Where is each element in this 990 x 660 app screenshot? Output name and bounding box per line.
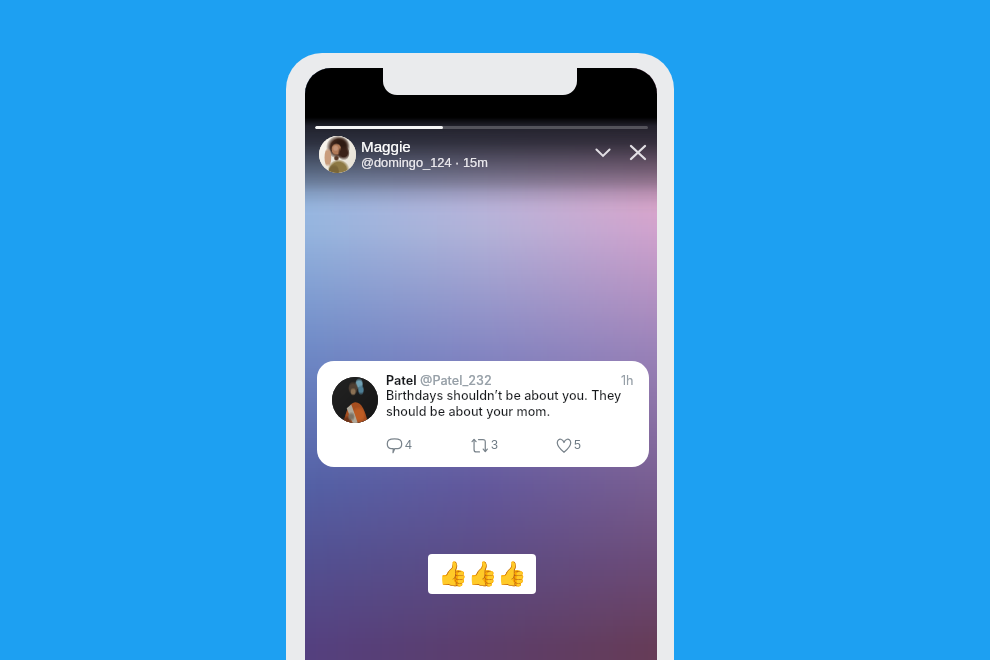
button[interactable]: Collapse: [588, 138, 617, 167]
button[interactable]: 👍👍👍: [428, 554, 536, 594]
staticText: 3: [491, 438, 498, 452]
staticText: Birthdays shouldn’t be about you. They s…: [386, 388, 634, 419]
staticText: 5: [574, 438, 581, 452]
button[interactable]: Patel @Patel_232: [317, 361, 649, 467]
staticText: Maggie: [361, 138, 411, 155]
button[interactable]: Close: [623, 138, 652, 167]
button[interactable]: 4: [387, 436, 412, 454]
staticText: 4: [405, 438, 412, 452]
button[interactable]: 3: [471, 436, 498, 454]
staticText: @domingo_124 · 15m: [361, 155, 488, 169]
staticText: Patel @Patel_232: [386, 373, 492, 388]
button[interactable]: [319, 136, 356, 173]
staticText: 👍👍👍: [438, 560, 527, 588]
button[interactable]: 5: [557, 436, 581, 454]
staticText: 1h: [621, 373, 634, 388]
